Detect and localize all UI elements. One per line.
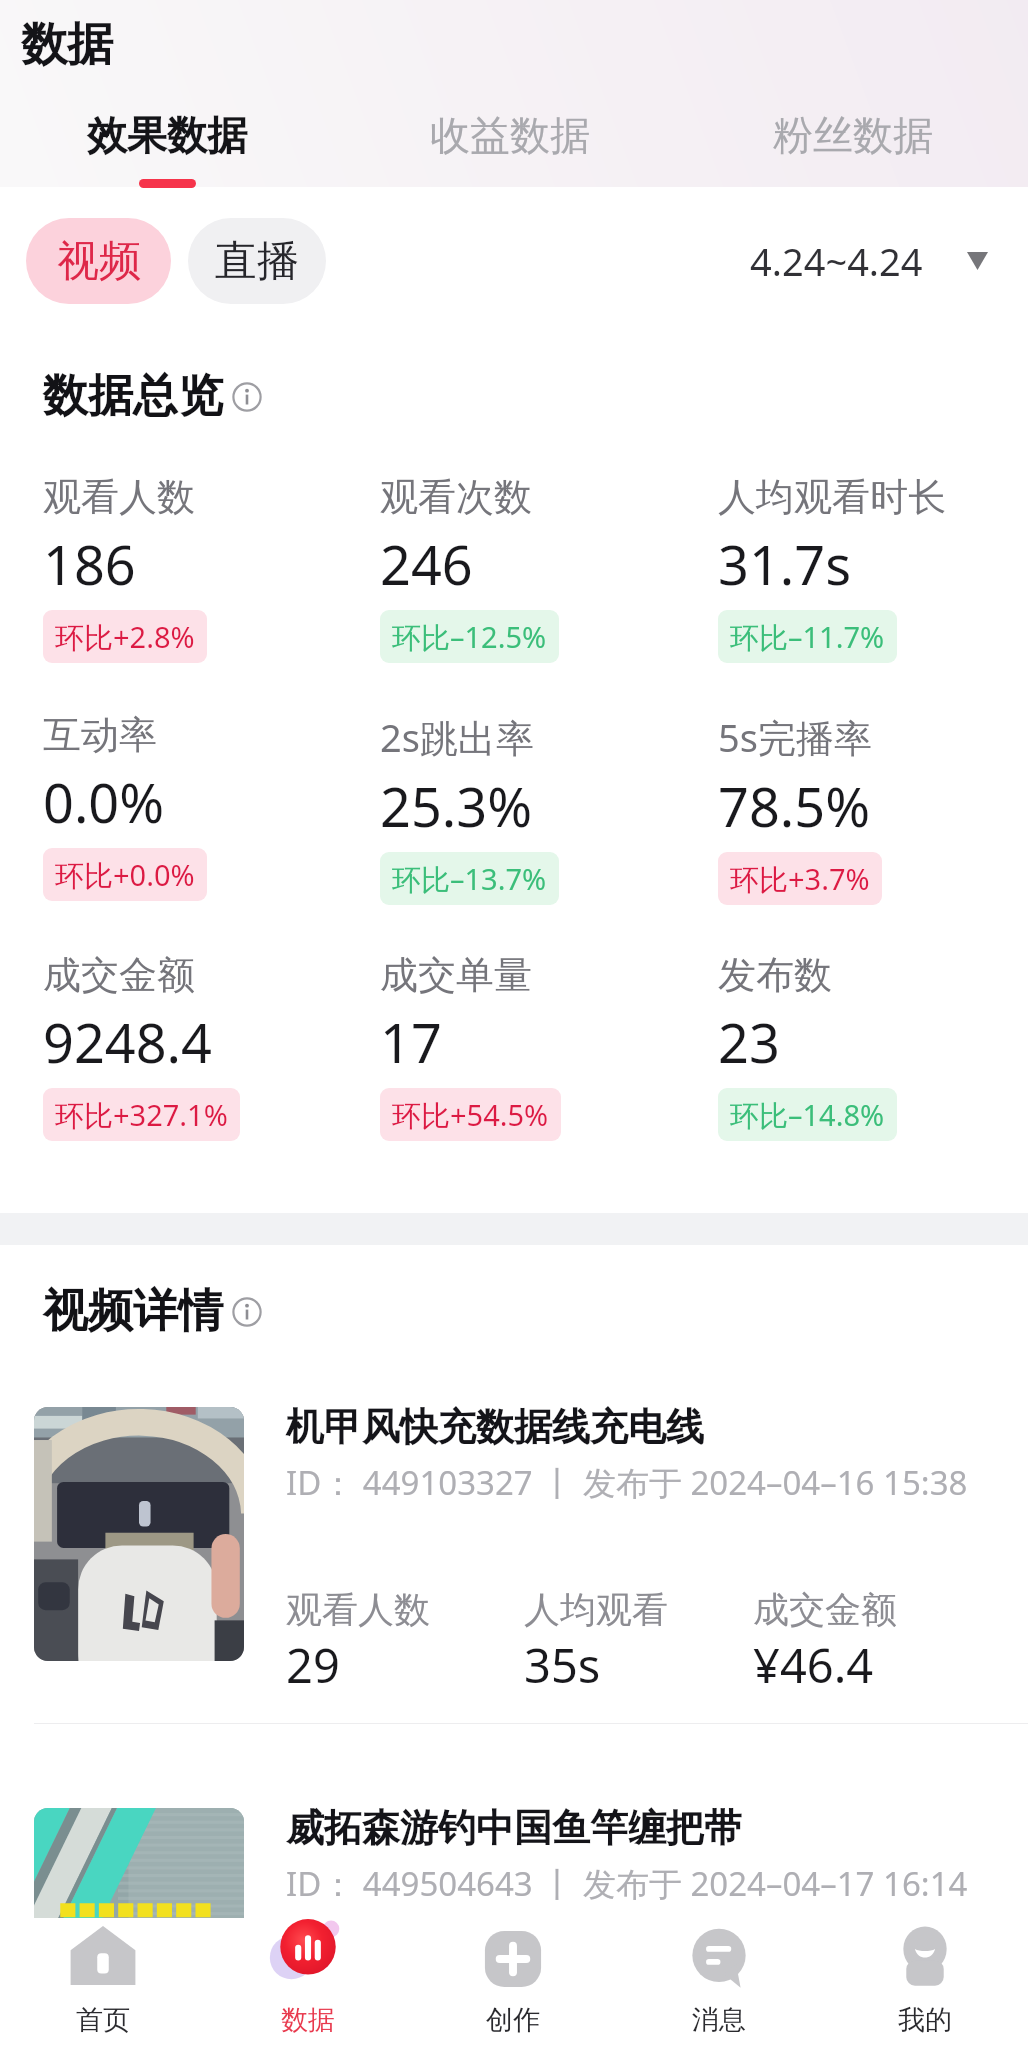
staticText: 人均观看 (524, 1587, 668, 1632)
staticText: 直播 (215, 235, 299, 288)
staticText: 环比+2.8% (55, 617, 195, 657)
staticText: 9248.4 (43, 1005, 212, 1079)
staticText: 成交金额 (43, 951, 195, 999)
staticText: 246 (380, 527, 473, 601)
button[interactable]: 消息 (616, 1905, 822, 2055)
button[interactable]: 视频 (26, 218, 171, 304)
staticText: 首页 (76, 2003, 130, 2037)
button[interactable]: 粉丝数据 (681, 110, 1024, 188)
staticText: 2s跳出率 (380, 711, 534, 763)
staticText: 威拓森游钓中国鱼竿缠把带 (286, 1804, 742, 1852)
staticText: 观看人数 (286, 1587, 430, 1632)
staticText: 环比–11.7% (730, 617, 885, 657)
button[interactable]: 数据 (205, 1905, 410, 2055)
staticText: 17 (380, 1005, 442, 1079)
staticText: 创作 (486, 2003, 540, 2037)
button[interactable]: 收益数据 (338, 110, 681, 188)
staticText: 78.5% (718, 769, 871, 843)
staticText: 观看次数 (380, 473, 532, 521)
button[interactable]: 我的 (822, 1905, 1028, 2055)
button[interactable]: 机甲风快充数据线充电线 (0, 1389, 1028, 1679)
staticText: 效果数据 (87, 110, 247, 160)
staticText: 视频详情 (43, 1283, 223, 1340)
staticText: ¥46.4 (753, 1633, 874, 1697)
staticText: 粉丝数据 (773, 110, 933, 160)
staticText: 观看人数 (286, 1988, 430, 2033)
staticText: 发布数 (718, 951, 832, 999)
staticText: 23 (718, 1005, 780, 1079)
staticText: 互动率 (43, 711, 157, 759)
staticText: 环比–12.5% (392, 617, 547, 657)
staticText: 186 (43, 527, 136, 601)
staticText: 数据 (21, 16, 113, 74)
staticText: 25.3% (380, 769, 533, 843)
staticText: 机甲风快充数据线充电线 (286, 1403, 704, 1451)
staticText: 数据总览 (43, 368, 223, 425)
staticText: 数据 (281, 2003, 335, 2037)
staticText: 4.24~4.24 (750, 235, 923, 287)
button[interactable]: 威拓森游钓中国鱼竿缠把带 (0, 1790, 1028, 2068)
staticText: 35s (524, 1633, 601, 1697)
staticText: 收益数据 (430, 110, 590, 160)
button[interactable]: 4.24~4.24 (750, 235, 988, 287)
staticText: 消息 (692, 2003, 746, 2037)
staticText: 环比+54.5% (392, 1095, 549, 1135)
staticText: 环比+327.1% (55, 1095, 228, 1135)
staticText: 人均观看时长 (718, 473, 946, 521)
staticText: 31.7s (718, 527, 852, 601)
staticText: 环比–14.8% (730, 1095, 885, 1135)
staticText: 环比+3.7% (730, 859, 870, 899)
button[interactable]: 直播 (188, 218, 326, 304)
staticText: ID： 449103327 丨 发布于 2024–04–16 15:38 (286, 1460, 968, 1505)
staticText: 29 (286, 1633, 340, 1697)
staticText: 成交单量 (380, 951, 532, 999)
staticText: 环比+0.0% (55, 855, 195, 895)
button[interactable]: 创作 (410, 1905, 616, 2055)
staticText: 环比–13.7% (392, 859, 547, 899)
button[interactable]: 首页 (0, 1905, 205, 2055)
staticText: 人均观看 (524, 1988, 668, 2033)
staticText: 我的 (898, 2003, 952, 2037)
button[interactable]: 数据总览 说明 (232, 382, 262, 412)
button[interactable]: 视频详情 说明 (232, 1297, 262, 1327)
button[interactable]: 效果数据 (0, 110, 338, 188)
staticText: ID： 449504643 丨 发布于 2024–04–17 16:14 (286, 1861, 968, 1906)
staticText: 0.0% (43, 765, 165, 839)
staticText: 视频 (57, 235, 141, 288)
staticText: 5s完播率 (718, 711, 872, 763)
staticText: 观看人数 (43, 473, 195, 521)
staticText: 成交金额 (753, 1587, 897, 1632)
